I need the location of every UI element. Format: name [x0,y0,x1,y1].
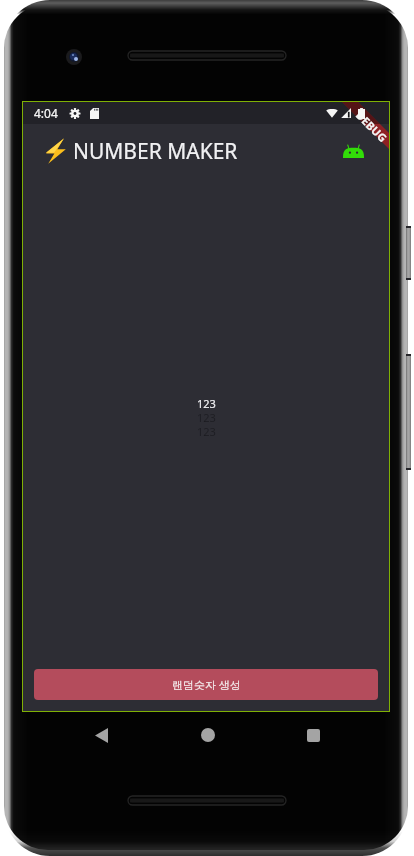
staticText: 랜덤숫자 생성 [172,677,241,692]
staticText: NUMBER MAKER [73,137,238,166]
staticText: 123 [197,396,216,410]
button[interactable]: Back [65,712,138,758]
staticText: 123 [197,424,216,438]
button[interactable]: Home [171,712,244,758]
staticText: DEBUG [354,108,390,144]
staticText: 123 [197,410,216,424]
button[interactable]: Recent apps [277,712,350,758]
staticText: 4:04 [34,105,58,121]
button[interactable]: 랜덤숫자 생성 [34,669,378,700]
